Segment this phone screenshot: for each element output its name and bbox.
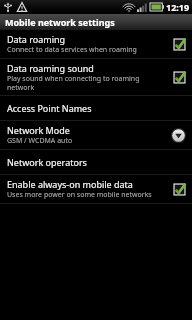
- staticText: Data roaming sound: [7, 62, 94, 74]
- button[interactable]: Network Mode: [0, 121, 192, 149]
- button[interactable]: Toggle setting: [172, 37, 187, 52]
- button[interactable]: Data roaming sound: [0, 59, 192, 95]
- staticText: Enable always-on mobile data: [7, 178, 133, 190]
- button[interactable]: Network operators: [0, 150, 192, 174]
- staticText: Uses more power on some mobile networks: [7, 190, 152, 200]
- staticText: 12:19: [166, 1, 190, 13]
- button[interactable]: Enable always-on mobile data: [0, 175, 192, 203]
- staticText: Mobile network settings: [5, 16, 115, 28]
- button[interactable]: Access Point Names: [0, 96, 192, 120]
- staticText: Access Point Names: [7, 102, 92, 114]
- staticText: Network Mode: [7, 124, 70, 136]
- staticText: Network operators: [7, 156, 87, 168]
- button[interactable]: Toggle setting: [172, 182, 187, 197]
- staticText: Connect to data services when roaming: [7, 45, 137, 55]
- staticText: Play sound when connecting to roaming ne…: [7, 74, 168, 92]
- button[interactable]: Toggle setting: [172, 70, 187, 85]
- staticText: GSM / WCDMA auto: [7, 136, 73, 146]
- button[interactable]: Open network mode list: [170, 127, 187, 144]
- staticText: Data roaming: [7, 33, 66, 45]
- button[interactable]: Data roaming: [0, 30, 192, 58]
